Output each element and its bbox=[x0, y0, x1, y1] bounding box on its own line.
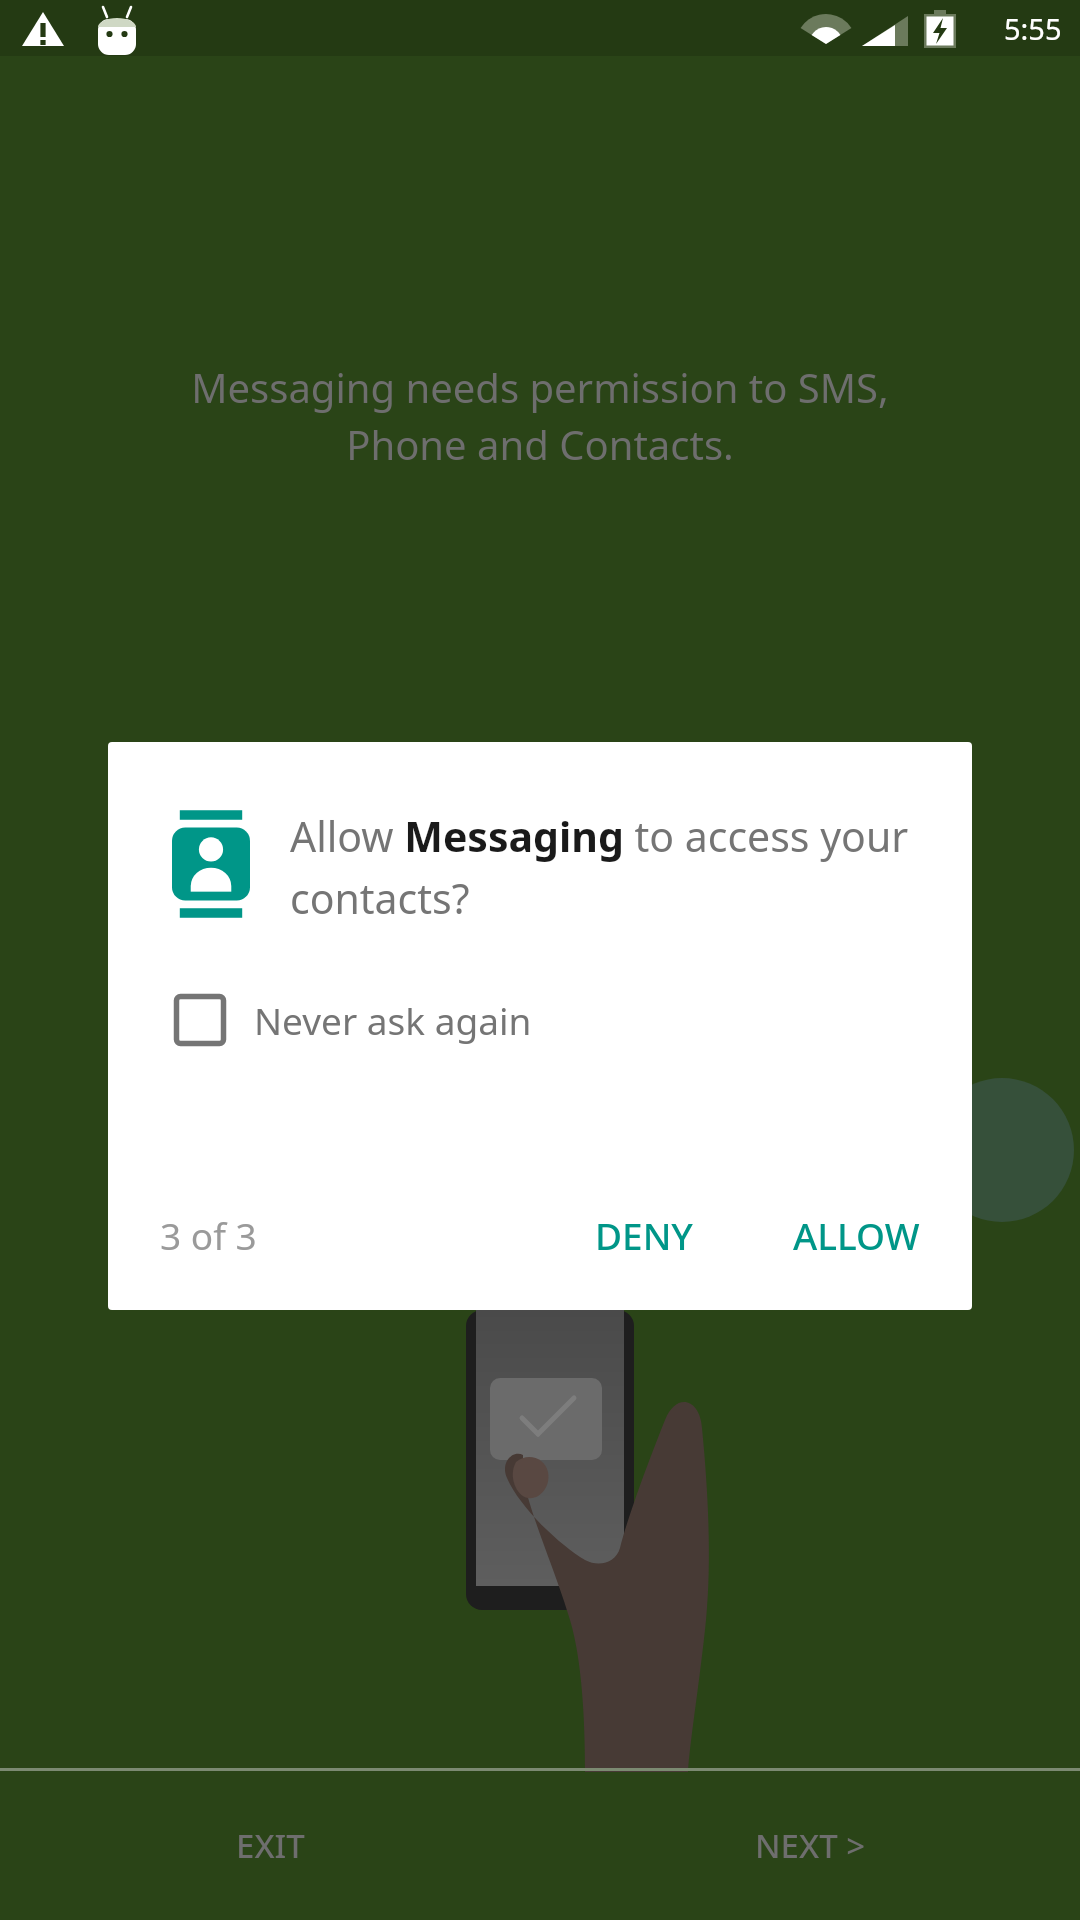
staticText: 3 of 3 bbox=[160, 1210, 257, 1260]
button[interactable]: ALLOW bbox=[765, 1190, 948, 1280]
staticText: Messaging needs permission to SMS, Phone… bbox=[60, 360, 1020, 471]
button[interactable]: Never ask again bbox=[172, 982, 532, 1058]
staticText: DENY bbox=[595, 1210, 693, 1260]
staticText: 5:55 bbox=[1004, 9, 1062, 48]
staticText: NEXT > bbox=[755, 1823, 866, 1868]
button[interactable]: NEXT > bbox=[540, 1771, 1080, 1920]
staticText: ALLOW bbox=[793, 1210, 920, 1260]
staticText: Allow Messaging to access your contacts? bbox=[290, 808, 924, 926]
staticText: EXIT bbox=[236, 1823, 305, 1868]
other: Contacts permission bbox=[172, 808, 250, 920]
button[interactable]: DENY bbox=[567, 1190, 721, 1280]
staticText: Never ask again bbox=[254, 995, 532, 1045]
button[interactable]: EXIT bbox=[0, 1771, 540, 1920]
